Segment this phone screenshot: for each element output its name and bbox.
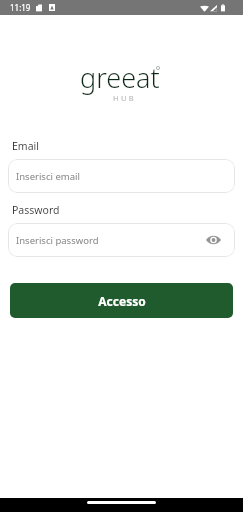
staticText: Password: [12, 203, 60, 217]
staticText: 11:19: [10, 2, 31, 13]
staticText: Email: [12, 139, 39, 153]
staticText: Inserisci email: [16, 170, 80, 183]
staticText: HUB: [113, 93, 137, 103]
staticText: Accesso: [98, 293, 146, 309]
button[interactable]: Accesso: [10, 283, 233, 318]
staticText: Inserisci password: [16, 234, 99, 247]
staticText: greeat: [80, 59, 160, 96]
button[interactable]: Show password: [204, 231, 222, 249]
button[interactable]: Inserisci email: [8, 159, 235, 193]
button[interactable]: Inserisci password: [8, 223, 235, 257]
